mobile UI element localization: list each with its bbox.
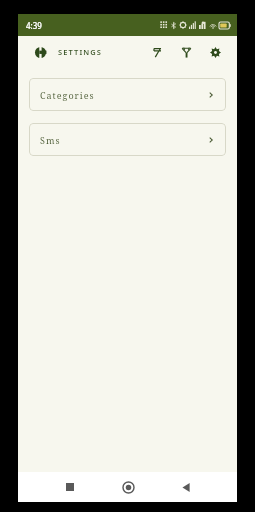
staticText: Sms [40, 134, 61, 146]
staticText: Categories [40, 89, 95, 101]
button[interactable]: Settings [204, 41, 226, 63]
button[interactable]: Currency [146, 41, 168, 63]
staticText: 4:39 [26, 20, 42, 31]
button[interactable]: Categories [29, 78, 226, 111]
button[interactable]: Sms [29, 123, 226, 156]
button[interactable]: Recent apps [48, 472, 92, 502]
button[interactable]: Filter [175, 41, 197, 63]
button[interactable]: App logo [29, 41, 51, 63]
button[interactable]: Home [106, 472, 150, 502]
button[interactable]: Back [164, 472, 208, 502]
staticText: SETTINGS [58, 47, 103, 57]
